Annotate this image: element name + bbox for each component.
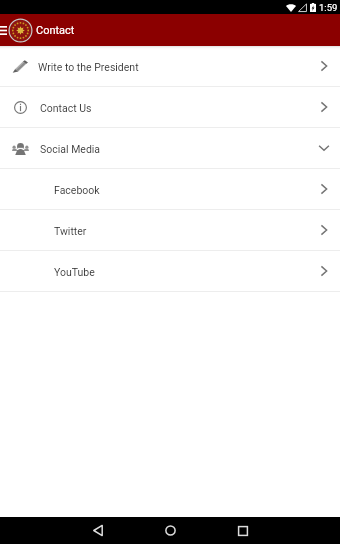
button[interactable]: Twitter	[0, 210, 340, 250]
staticText: 1:59	[319, 2, 338, 13]
button[interactable]: Open navigation menu	[0, 17, 9, 43]
button[interactable]: Home	[146, 517, 194, 544]
staticText: YouTube	[54, 266, 95, 278]
staticText: Social Media	[40, 143, 101, 155]
staticText: Twitter	[54, 225, 87, 237]
staticText: Contact Us	[40, 102, 92, 114]
button[interactable]: Social Media	[0, 128, 340, 168]
button[interactable]: YouTube	[0, 251, 340, 291]
staticText: Contact	[36, 24, 75, 37]
button[interactable]: Write to the President	[0, 46, 340, 86]
button[interactable]: Facebook	[0, 169, 340, 209]
button[interactable]: Back	[74, 517, 122, 544]
button[interactable]: Recent apps	[219, 517, 267, 544]
button[interactable]: Contact Us	[0, 87, 340, 127]
staticText: Facebook	[54, 184, 100, 196]
staticText: Write to the President	[38, 61, 139, 73]
